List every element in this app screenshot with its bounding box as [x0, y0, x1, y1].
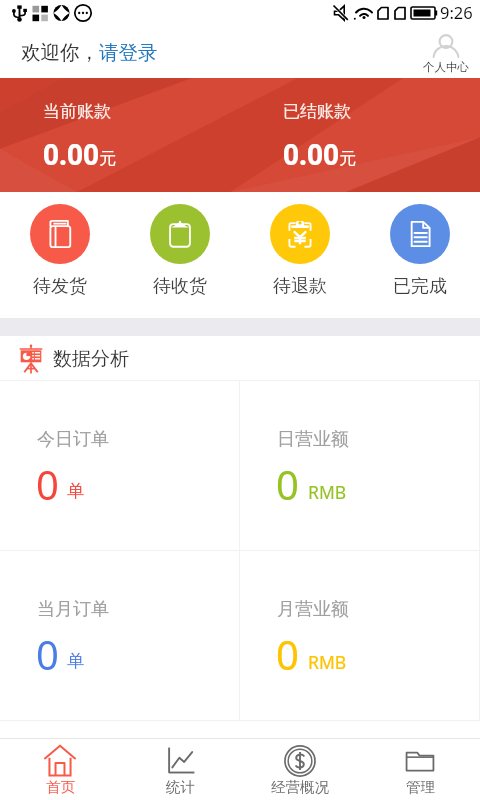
button[interactable]: 当月订单 [0, 551, 240, 721]
button[interactable]: 个人中心 [423, 26, 480, 78]
staticText: 单 [67, 480, 85, 502]
staticText: 个人中心 [423, 60, 469, 74]
staticText: 0 [36, 457, 59, 511]
button[interactable]: 统计 [120, 739, 240, 800]
staticText: 今日订单 [37, 428, 109, 451]
button[interactable]: 待收货 [120, 192, 240, 318]
staticText: 日营业额 [277, 428, 349, 451]
button[interactable]: 已结账款 [240, 78, 480, 192]
staticText: 当月订单 [37, 598, 109, 621]
staticText: 元 [339, 148, 356, 169]
button[interactable]: 月营业额 [240, 551, 480, 721]
staticText: 待收货 [153, 275, 207, 298]
staticText: 月营业额 [277, 598, 349, 621]
button[interactable]: 日营业额 [240, 381, 480, 551]
staticText: 数据分析 [53, 347, 129, 371]
button[interactable]: 数据分析 [0, 336, 480, 381]
staticText: 0 [276, 627, 299, 681]
button[interactable]: 待退款 [240, 192, 360, 318]
staticText: 欢迎你， [21, 40, 99, 65]
staticText: 0.00 [283, 135, 339, 173]
staticText: 经营概况 [271, 778, 329, 796]
button[interactable]: 今日订单 [0, 381, 240, 551]
staticText: 待发货 [33, 275, 87, 298]
staticText: 已结账款 [283, 101, 351, 122]
staticText: 待退款 [273, 275, 327, 298]
button[interactable]: 管理 [360, 739, 480, 800]
staticText: 请登录 [99, 40, 158, 65]
button[interactable]: 欢迎你， [0, 26, 170, 78]
button[interactable]: 经营概况 [240, 739, 360, 800]
staticText: 单 [67, 650, 85, 672]
staticText: 已完成 [393, 275, 447, 298]
staticText: 0 [36, 627, 59, 681]
staticText: 0 [276, 457, 299, 511]
button[interactable]: 当前账款 [0, 78, 240, 192]
staticText: 首页 [46, 778, 75, 796]
staticText: RMB [308, 650, 347, 674]
staticText: 当前账款 [43, 101, 111, 122]
button[interactable]: 已完成 [360, 192, 480, 318]
staticText: 统计 [166, 778, 195, 796]
staticText: 元 [99, 148, 116, 169]
staticText: 0.00 [43, 135, 99, 173]
staticText: 9:26 [440, 1, 473, 23]
staticText: 管理 [406, 778, 435, 796]
button[interactable]: 待发货 [0, 192, 120, 318]
staticText: RMB [308, 480, 347, 504]
button[interactable]: 首页 [0, 739, 120, 800]
